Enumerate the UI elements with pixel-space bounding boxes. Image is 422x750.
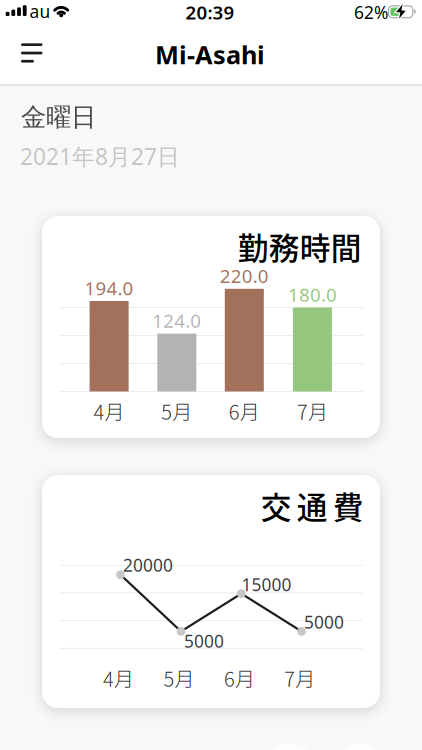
staticText: 2021年8月27日 (20, 141, 180, 171)
staticText: 5月 (161, 396, 192, 425)
staticText: 5月 (163, 663, 194, 692)
staticText: 220.0 (220, 263, 269, 288)
staticText: 4月 (103, 663, 134, 692)
staticText: 勤務時間 (238, 224, 362, 269)
staticText: 金曜日 (21, 102, 96, 133)
staticText: 15000 (241, 573, 291, 596)
staticText: 194.0 (85, 276, 134, 300)
staticText: 62% (354, 1, 388, 24)
staticText: 6月 (229, 396, 260, 425)
staticText: Mi-Asahi (155, 38, 265, 71)
staticText: 4月 (94, 396, 125, 425)
staticText: 180.0 (288, 282, 337, 307)
staticText: 7月 (297, 396, 328, 425)
staticText: 20000 (123, 553, 173, 576)
staticText: 20:39 (185, 0, 234, 25)
staticText: 124.0 (152, 308, 201, 333)
staticText: 6月 (224, 663, 255, 692)
button[interactable] (10, 31, 54, 75)
staticText: 5000 (184, 629, 224, 652)
staticText: 5000 (304, 610, 344, 633)
staticText: 7月 (284, 663, 315, 692)
staticText: au (29, 0, 50, 23)
staticText: 交通費 (261, 483, 364, 528)
